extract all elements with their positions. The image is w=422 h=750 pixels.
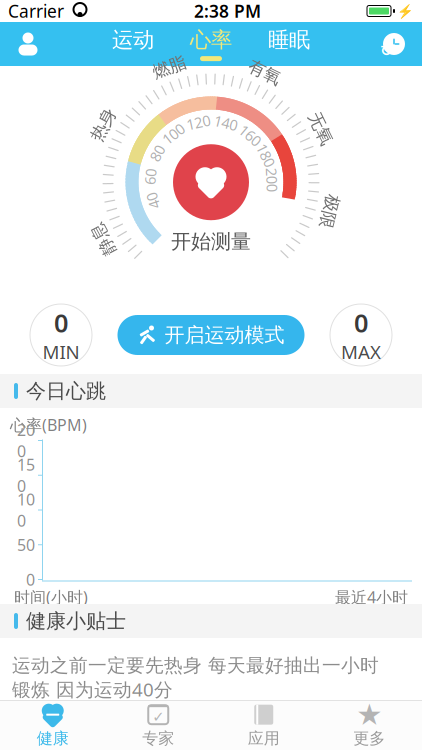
staticText: ✓ [152, 708, 164, 725]
staticText: 极限 [194, 49, 228, 71]
staticText: 120 [199, 111, 223, 131]
staticText: ★ [356, 698, 382, 731]
staticText: 健康小贴士 [26, 609, 126, 633]
staticText: 100 [17, 489, 35, 531]
staticText: 40 [203, 111, 219, 131]
button[interactable]: Profile [0, 22, 56, 66]
staticText: 燃脂 [194, 49, 228, 71]
staticText: 200 [17, 419, 35, 462]
staticText: 200 [199, 111, 223, 131]
staticText: 更多 [353, 729, 385, 748]
staticText: 最近4小时 [335, 586, 408, 608]
staticText: 健康 [37, 729, 69, 748]
staticText: 140 [199, 111, 223, 131]
staticText: 开始测量 [171, 229, 251, 254]
staticText: 0 [54, 306, 68, 339]
staticText: 心率(BPM) [10, 414, 87, 435]
button[interactable]: 开启运动模式 [117, 315, 304, 355]
staticText: 50 [17, 534, 35, 555]
button[interactable]: 开始测量 [173, 144, 249, 220]
staticText: MIN [42, 339, 79, 364]
staticText: 专家 [142, 729, 174, 748]
button[interactable]: ★ [316, 701, 422, 750]
staticText: 睡眠 [268, 27, 310, 53]
staticText: 今日心跳 [26, 379, 106, 403]
staticText: 60 [203, 111, 219, 131]
staticText: 无氧 [194, 49, 228, 71]
staticText: 80 [203, 111, 219, 131]
button[interactable]: 运动 [94, 22, 172, 66]
staticText: Carrier [8, 0, 64, 22]
staticText: 0 [26, 569, 35, 590]
staticText: 时间(小时) [14, 586, 88, 608]
staticText: 热身 [194, 49, 228, 71]
staticText: 有氧 [194, 49, 228, 71]
staticText: 100 [199, 111, 223, 131]
staticText: ⚡ [397, 3, 414, 19]
staticText: 开启运动模式 [164, 323, 284, 347]
staticText: 180 [199, 111, 223, 131]
button[interactable]: ✓ [105, 701, 211, 750]
staticText: 运动 [112, 27, 154, 53]
staticText: 静息 [194, 49, 228, 71]
staticText: 160 [199, 111, 223, 131]
staticText: 心率 [190, 27, 232, 53]
button[interactable]: 健康 [0, 701, 105, 750]
staticText: 150 [17, 454, 35, 496]
staticText: 应用 [248, 729, 280, 748]
staticText: 0 [354, 306, 368, 339]
button[interactable]: 心率 [172, 22, 250, 66]
button[interactable]: 0 [328, 302, 394, 368]
staticText: MAX [341, 339, 381, 364]
button[interactable]: 应用 [211, 701, 316, 750]
button[interactable]: History [366, 22, 422, 66]
staticText: 运动之前一定要先热身 每天最好抽出一小时锻炼 因为运动40分 [12, 654, 379, 702]
button[interactable]: 0 [28, 302, 94, 368]
button[interactable]: 睡眠 [250, 22, 328, 66]
staticText: 2:38 PM [194, 0, 261, 22]
staticText: ↻ [380, 43, 392, 59]
